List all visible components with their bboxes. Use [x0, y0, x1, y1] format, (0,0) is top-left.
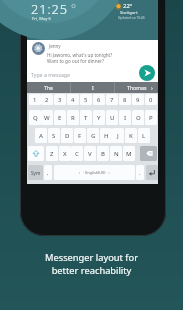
button[interactable]: I [71, 82, 114, 93]
staticText: 1 [33, 96, 37, 104]
staticText: B [101, 150, 105, 158]
staticText: N [114, 150, 119, 158]
button[interactable]: Sym [28, 165, 43, 180]
staticText: M [126, 150, 132, 158]
staticText: Hi Jawomo, what's up tonight? [47, 52, 113, 58]
staticText: 8 [123, 96, 127, 104]
button[interactable]: M [123, 146, 135, 161]
staticText: Updated on 15:45 [118, 16, 145, 20]
staticText: P [149, 114, 153, 122]
staticText: V [88, 150, 92, 158]
button[interactable]: W [41, 110, 53, 125]
staticText: 9 [136, 96, 140, 104]
staticText: , [47, 169, 49, 176]
button[interactable]: 3 [54, 94, 66, 105]
button[interactable]: T [80, 110, 92, 125]
staticText: C [75, 150, 79, 158]
staticText: 0 [149, 96, 153, 104]
staticText: F [78, 132, 82, 140]
staticText: X [63, 150, 67, 158]
staticText: › [151, 84, 153, 92]
button[interactable]: C [71, 146, 83, 161]
button[interactable] [140, 146, 157, 161]
button[interactable]: D [61, 128, 73, 143]
button[interactable]: U [106, 110, 118, 125]
button[interactable]: 5 [80, 94, 92, 105]
staticText: Sym [31, 170, 41, 176]
button[interactable]: 9 [132, 94, 144, 105]
staticText: 21:25 [31, 0, 68, 17]
staticText: S [52, 132, 56, 140]
button[interactable]: G [87, 128, 99, 143]
button[interactable]: Y [93, 110, 105, 125]
button[interactable]: X [59, 146, 71, 161]
button[interactable]: E [54, 110, 66, 125]
button[interactable]: 2 [41, 94, 53, 105]
button[interactable]: 1 [29, 94, 41, 105]
button[interactable]: 0 [145, 94, 157, 105]
staticText: H [104, 132, 109, 140]
staticText: Messenger layout for better reachability [0, 251, 183, 276]
button[interactable]: N [110, 146, 122, 161]
button[interactable]: The [27, 82, 70, 93]
button[interactable] [146, 165, 158, 180]
button[interactable]: Q [29, 110, 41, 125]
button[interactable]: O [132, 110, 144, 125]
staticText: Jenny [49, 43, 61, 49]
button[interactable]: Thomas [115, 82, 158, 93]
button[interactable]: 4 [67, 94, 79, 105]
button[interactable]: ‹ · English(UK) › [54, 165, 135, 180]
staticText: G [91, 132, 96, 140]
staticText: I [92, 84, 94, 91]
button[interactable]: 6 [93, 94, 105, 105]
staticText: Want to go out for dinner? [47, 58, 104, 64]
button[interactable]: A [35, 128, 47, 143]
button[interactable]: , [44, 165, 52, 180]
button[interactable]: B [97, 146, 109, 161]
button[interactable]: S [48, 128, 60, 143]
staticText: 5 [84, 96, 88, 104]
staticText: 22° [123, 2, 133, 10]
button[interactable]: 8 [119, 94, 131, 105]
staticText: T [84, 114, 88, 122]
staticText: ‹ · English(UK) › [79, 170, 110, 175]
button[interactable] [28, 146, 44, 161]
staticText: Fri, May 6 [32, 16, 51, 22]
button[interactable]: . [136, 165, 144, 180]
staticText: E [58, 114, 62, 122]
button[interactable]: F [74, 128, 86, 143]
button[interactable]: R [67, 110, 79, 125]
staticText: K [129, 132, 133, 140]
staticText: The [44, 84, 54, 91]
staticText: I [124, 114, 127, 122]
button[interactable]: I [119, 110, 131, 125]
staticText: O [136, 114, 141, 122]
staticText: D [65, 132, 70, 140]
staticText: Z [50, 150, 54, 158]
staticText: U [110, 114, 115, 122]
staticText: 7 [110, 96, 114, 104]
staticText: J [117, 132, 119, 140]
staticText: Q [33, 114, 38, 122]
button[interactable]: J [112, 128, 124, 143]
staticText: W [44, 114, 50, 122]
button[interactable]: H [100, 128, 112, 143]
staticText: Type a message [31, 71, 70, 78]
button[interactable]: P [145, 110, 157, 125]
button[interactable]: K [125, 128, 137, 143]
staticText: Y [97, 114, 101, 122]
staticText: 4 [71, 96, 75, 104]
button[interactable]: Jenny [27, 40, 158, 82]
staticText: 2 [45, 96, 49, 104]
staticText: A [39, 132, 43, 140]
staticText: . [139, 169, 141, 176]
button[interactable]: 7 [106, 94, 118, 105]
staticText: Stuttgart [120, 10, 138, 16]
button[interactable]: L [138, 128, 150, 143]
staticText: Thomas [127, 84, 147, 91]
staticText: 3 [58, 96, 62, 104]
staticText: R [71, 114, 75, 122]
button[interactable] [139, 65, 155, 81]
button[interactable]: Z [46, 146, 58, 161]
button[interactable]: V [84, 146, 96, 161]
